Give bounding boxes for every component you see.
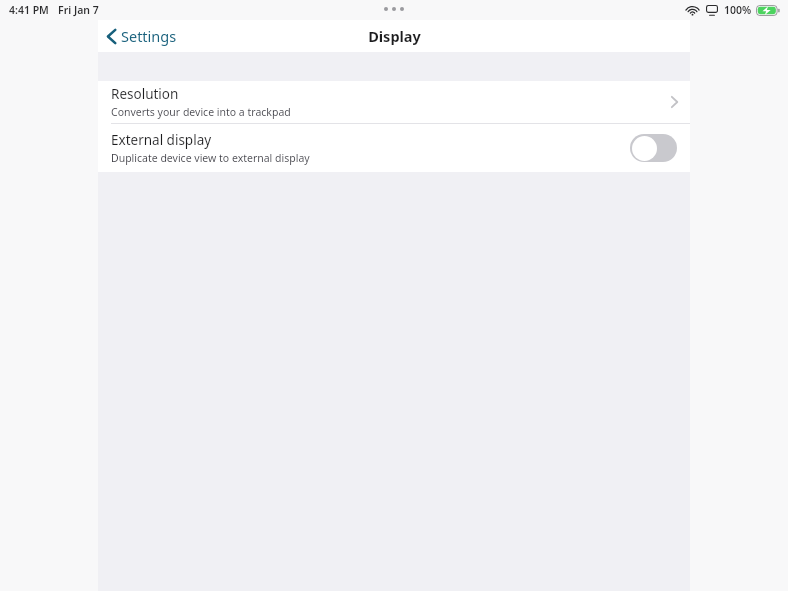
staticText: Duplicate device view to external displa…	[111, 151, 310, 165]
staticText: Settings	[121, 26, 177, 46]
button[interactable]: External display toggle	[630, 134, 677, 162]
button[interactable]: External display	[98, 124, 690, 172]
staticText: 100%	[724, 3, 752, 17]
button[interactable]: Settings	[103, 22, 181, 50]
staticText: Resolution	[111, 85, 179, 103]
staticText: Display	[368, 26, 421, 46]
staticText: External display	[111, 131, 212, 149]
staticText: 4:41 PM	[9, 3, 49, 17]
button[interactable]: Resolution	[98, 81, 690, 123]
staticText: Converts your device into a trackpad	[111, 105, 291, 119]
staticText: Fri Jan 7	[58, 3, 99, 17]
